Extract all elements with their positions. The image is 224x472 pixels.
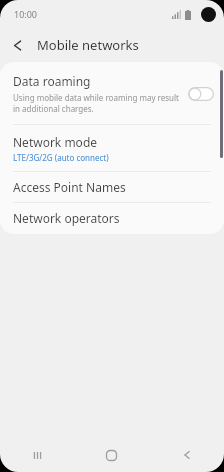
staticText: Network operators — [13, 210, 120, 226]
staticText: LTE/3G/2G (auto connect) — [13, 152, 109, 163]
button[interactable]: Back — [149, 438, 224, 472]
button[interactable]: Access Point Names — [0, 172, 224, 202]
button[interactable]: Back — [0, 28, 34, 62]
staticText: Network mode — [13, 134, 98, 150]
button[interactable]: Network operators — [0, 203, 224, 233]
button[interactable]: Home — [74, 438, 149, 472]
button[interactable]: Data roaming — [0, 62, 224, 124]
staticText: Data roaming — [13, 73, 91, 89]
button[interactable]: Network mode — [0, 125, 224, 171]
staticText: Mobile networks — [37, 36, 139, 54]
staticText: 10:00 — [14, 8, 38, 20]
staticText: Access Point Names — [13, 179, 126, 195]
button[interactable]: Recents — [0, 438, 74, 472]
staticText: Using mobile data while roaming may resu… — [13, 92, 182, 114]
